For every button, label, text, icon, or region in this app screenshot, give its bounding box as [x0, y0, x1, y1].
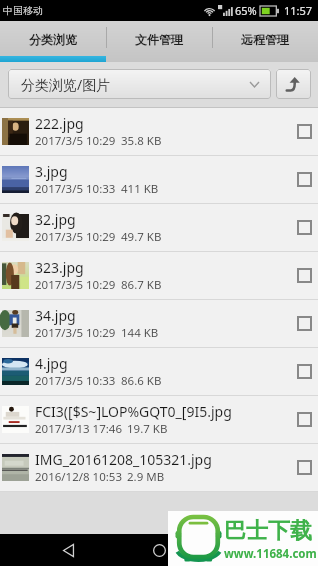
staticText: FCI3([$S~]LOP%GQT0_[9I5.jpg [35, 402, 232, 421]
button[interactable]: Up one level [276, 69, 311, 99]
staticText: 34.jpg [35, 306, 76, 325]
staticText: 86.7 KB [121, 277, 162, 293]
button[interactable]: 3.jpg [0, 156, 318, 203]
staticText: 32.jpg [35, 210, 76, 229]
button[interactable]: 32.jpg [0, 204, 318, 251]
staticText: 2017/3/5 10:33 [35, 373, 116, 389]
button[interactable]: 文件管理 [106, 21, 212, 58]
button[interactable]: Select [282, 348, 318, 395]
staticText: 2017/3/5 10:29 [35, 277, 116, 293]
button[interactable]: 4.jpg [0, 348, 318, 395]
staticText: 65% [235, 3, 257, 18]
button[interactable]: Select [282, 396, 318, 443]
staticText: 2017/3/5 10:33 [35, 181, 116, 197]
staticText: 2017/3/13 17:46 [35, 421, 122, 437]
button[interactable]: FCI3([$S~]LOP%GQT0_[9I5.jpg [0, 396, 318, 443]
button[interactable]: Recents [227, 534, 273, 566]
staticText: IMG_20161208_105321.jpg [35, 450, 212, 469]
staticText: 2017/3/5 10:29 [35, 133, 116, 149]
staticText: 2.9 MB [127, 469, 165, 485]
staticText: 144 KB [121, 325, 159, 341]
button[interactable]: 34.jpg [0, 300, 318, 347]
button[interactable]: 分类浏览 [0, 21, 106, 58]
staticText: 远程管理 [241, 32, 289, 47]
staticText: 411 KB [121, 181, 159, 197]
staticText: 文件管理 [135, 32, 183, 47]
button[interactable]: Select [282, 252, 318, 299]
staticText: 19.7 KB [127, 421, 168, 437]
staticText: www.11684.com [224, 546, 317, 562]
staticText: 4.jpg [35, 354, 68, 373]
button[interactable]: Select [282, 444, 318, 491]
button[interactable]: 分类浏览/图片 [8, 69, 271, 99]
button[interactable]: 远程管理 [212, 21, 318, 58]
button[interactable]: Select [282, 204, 318, 251]
staticText: 中国移动 [3, 4, 43, 17]
staticText: 323.jpg [35, 258, 84, 277]
button[interactable]: 323.jpg [0, 252, 318, 299]
staticText: 11:57 [284, 3, 313, 18]
button[interactable]: Back [45, 534, 91, 566]
button[interactable]: Select [282, 108, 318, 155]
staticText: 2016/12/8 10:53 [35, 469, 122, 485]
staticText: 86.6 KB [121, 373, 162, 389]
staticText: 分类浏览/图片 [21, 75, 111, 94]
staticText: 分类浏览 [29, 32, 77, 47]
staticText: 222.jpg [35, 114, 84, 133]
staticText: 2017/3/5 10:29 [35, 229, 116, 245]
button[interactable]: Home [136, 534, 182, 566]
staticText: 巴士下载 [224, 517, 312, 545]
staticText: 35.8 KB [121, 133, 162, 149]
button[interactable]: Select [282, 300, 318, 347]
staticText: 3.jpg [35, 162, 68, 181]
button[interactable]: Select [282, 156, 318, 203]
button[interactable]: 222.jpg [0, 108, 318, 155]
button[interactable]: IMG_20161208_105321.jpg [0, 444, 318, 491]
staticText: 2017/3/5 10:29 [35, 325, 116, 341]
staticText: 49.7 KB [121, 229, 162, 245]
